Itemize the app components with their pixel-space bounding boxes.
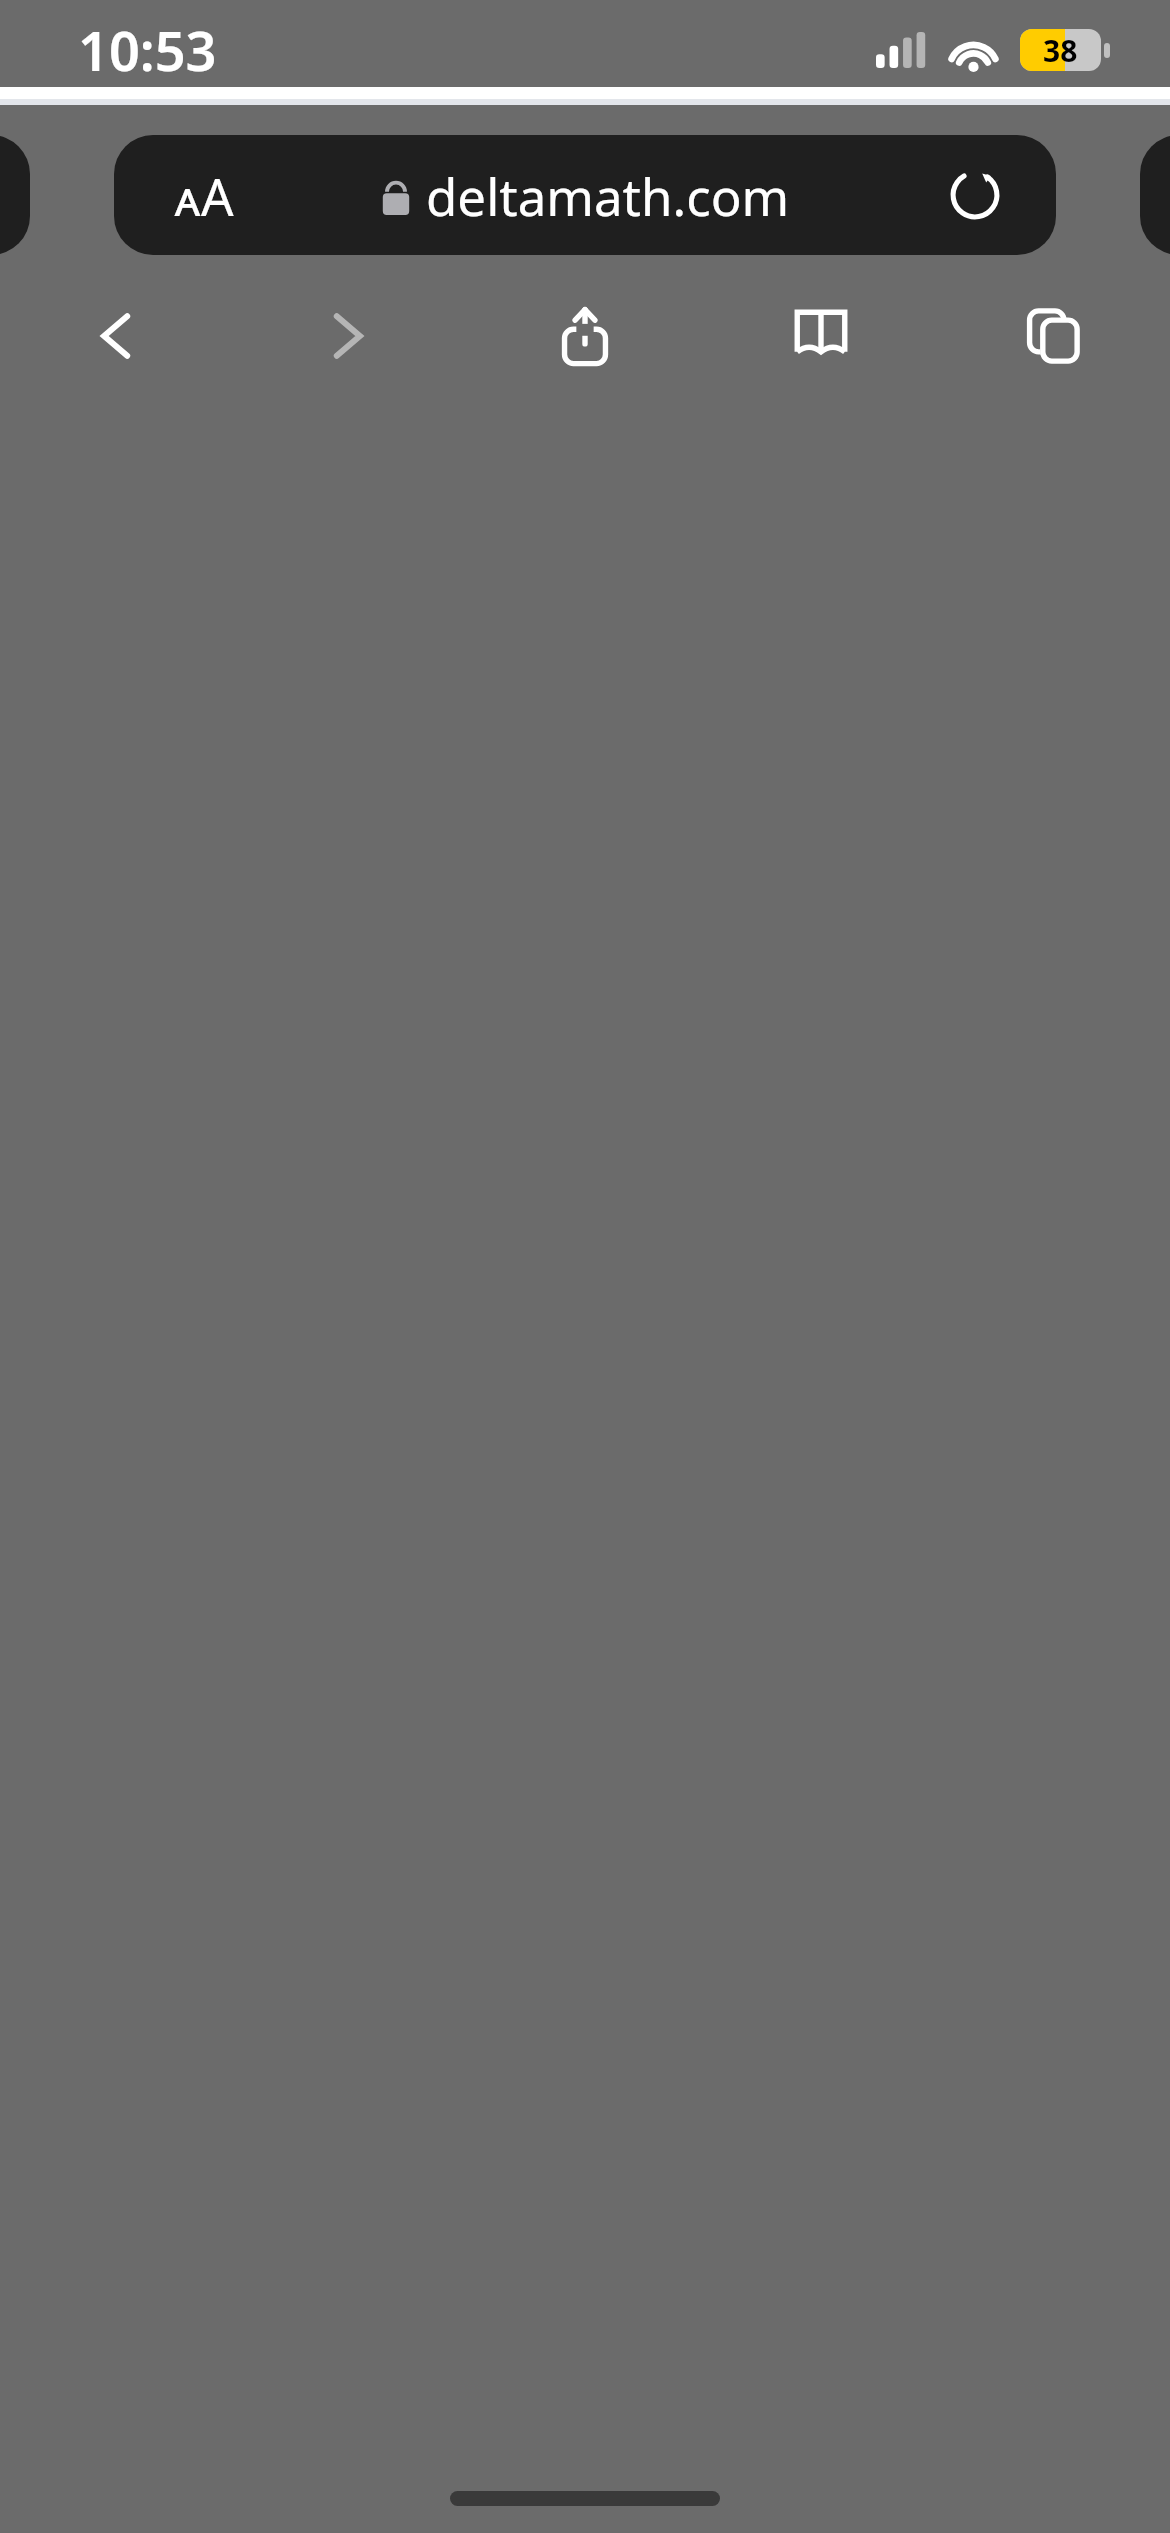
button[interactable]: Next tab — [1140, 135, 1170, 255]
button[interactable]: Forward — [266, 297, 434, 375]
button[interactable]: Share — [501, 297, 669, 375]
button[interactable]: ᴀA — [114, 135, 1056, 255]
button[interactable]: Tabs — [972, 297, 1140, 375]
button[interactable]: Back — [30, 297, 198, 375]
staticText: ᴀA — [174, 161, 234, 230]
staticText: 10:53 — [78, 13, 217, 87]
button[interactable]: Previous tab — [0, 135, 30, 255]
button[interactable]: Reload — [948, 168, 1002, 222]
button[interactable]: Bookmarks — [737, 297, 905, 375]
staticText: deltamath.com — [426, 161, 790, 230]
staticText: 38 — [1043, 30, 1078, 71]
